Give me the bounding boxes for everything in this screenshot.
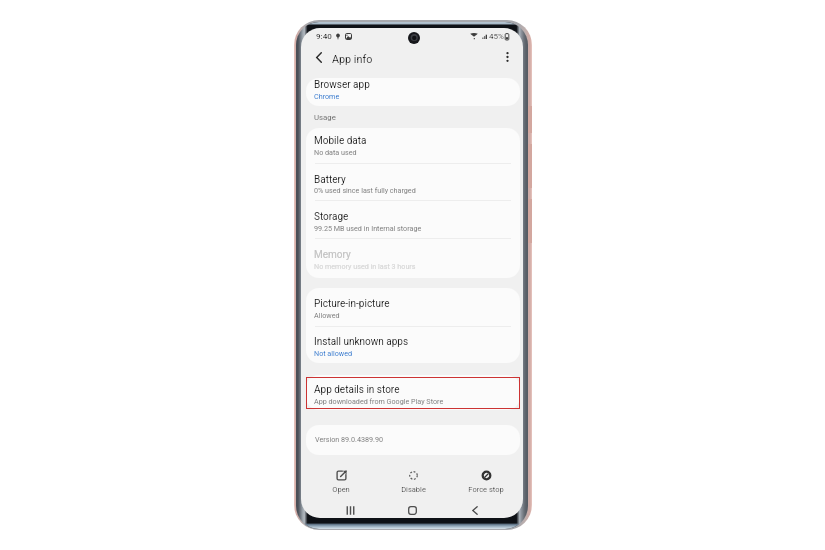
staticText: Picture-in-picture [314,298,390,310]
staticText: App info [332,53,373,66]
button[interactable]: Memory [306,238,520,278]
staticText: Usage [314,113,336,122]
staticText: Not allowed [314,349,353,357]
button[interactable]: Picture-in-picture [306,288,520,326]
staticText: Disable [401,485,426,494]
staticText: Allowed [314,311,340,319]
staticText: 0% used since last fully charged [314,186,416,194]
button[interactable]: Open [311,467,371,497]
staticText: Install unknown apps [314,336,409,348]
button[interactable]: Mobile data [306,128,520,163]
button[interactable]: Disable [383,467,443,497]
staticText: Memory [314,249,351,261]
staticText: Battery [314,174,346,186]
button[interactable]: App details in store [306,375,520,410]
staticText: No memory used in last 3 hours [314,262,416,270]
button[interactable]: Storage [306,200,520,238]
staticText: Browser app [314,79,370,91]
staticText: 99.25 MB used in Internal storage [314,224,422,232]
staticText: App details in store [314,384,400,396]
button[interactable]: Home [400,498,424,518]
button[interactable]: Back [310,48,328,66]
button[interactable]: More options [498,48,516,66]
staticText: Storage [314,211,349,223]
staticText: Version 89.0.4389.90 [315,435,384,443]
button[interactable]: Install unknown apps [306,326,520,364]
staticText: 45% [489,32,504,41]
staticText: Chrome [314,92,340,100]
button[interactable]: Recent apps [338,498,362,518]
staticText: No data used [314,148,357,156]
button[interactable]: Battery [306,163,520,200]
button[interactable]: Force stop [456,467,516,497]
button[interactable]: Browser app [306,78,520,106]
staticText: Mobile data [314,135,367,147]
staticText: Force stop [468,485,504,494]
button[interactable]: Back [463,498,487,518]
staticText: 9:40 [316,32,332,41]
staticText: Open [332,485,350,494]
staticText: App downloaded from Google Play Store [314,397,444,405]
